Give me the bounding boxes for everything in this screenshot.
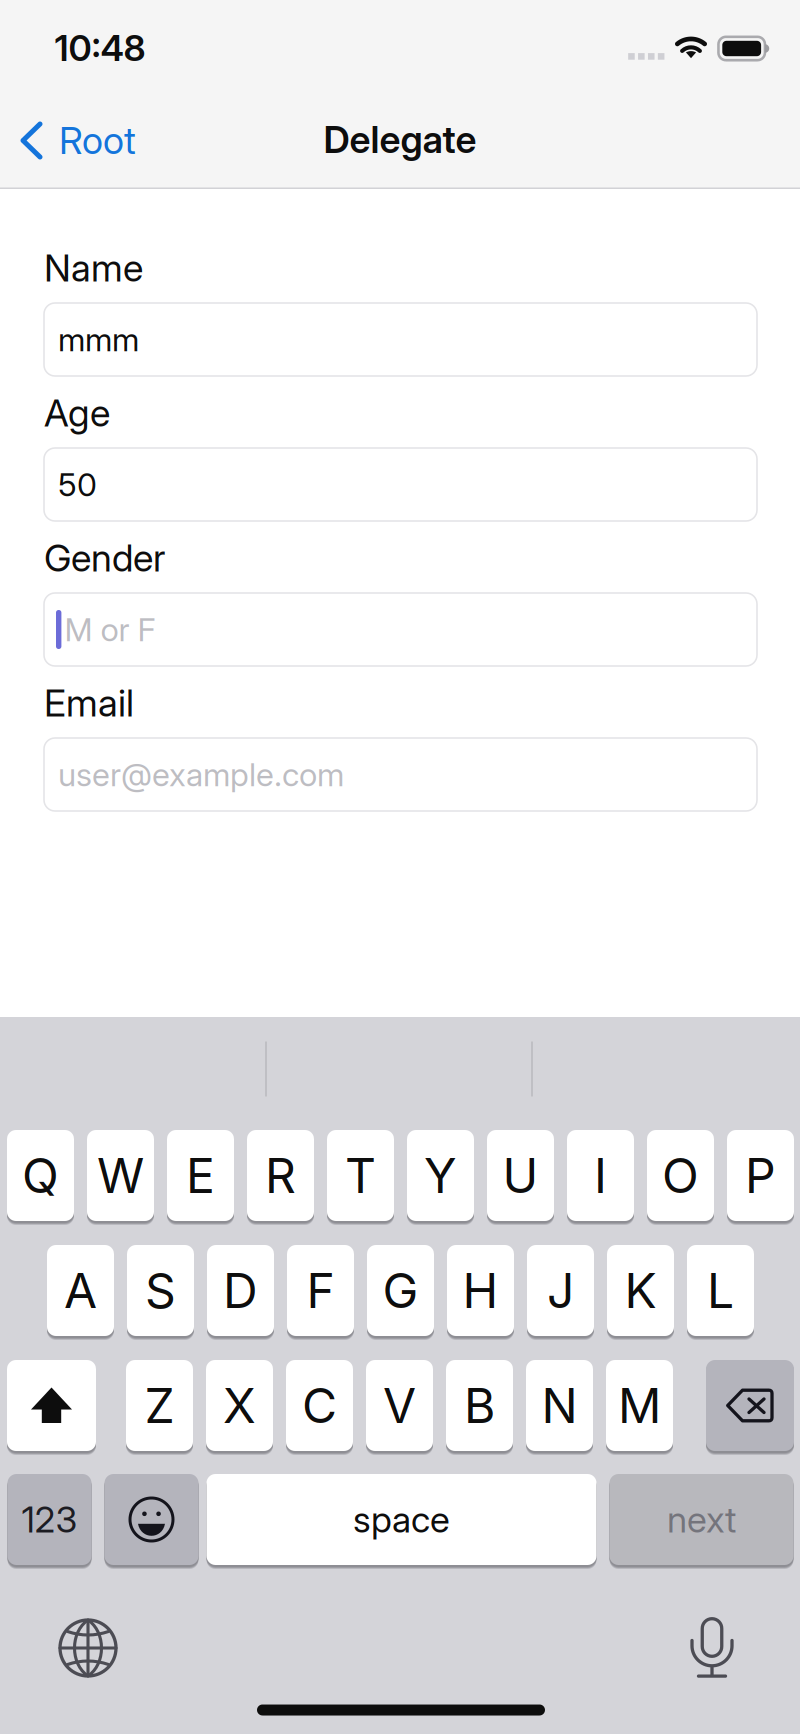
button[interactable]: N bbox=[526, 1360, 593, 1451]
button[interactable]: B bbox=[446, 1360, 513, 1451]
button[interactable]: user@example.com bbox=[44, 738, 757, 811]
button[interactable]: Next keyboard bbox=[50, 1610, 126, 1686]
staticText: Delegate bbox=[323, 117, 476, 162]
staticText: B bbox=[464, 1376, 495, 1435]
button[interactable]: X bbox=[206, 1360, 273, 1451]
button[interactable]: 123 bbox=[7, 1474, 91, 1565]
button[interactable]: Dictation bbox=[677, 1610, 747, 1686]
staticText: E bbox=[186, 1146, 215, 1205]
button[interactable]: S bbox=[127, 1245, 194, 1336]
staticText: user@example.com bbox=[58, 755, 344, 794]
staticText: Z bbox=[144, 1376, 174, 1435]
staticText: Y bbox=[424, 1146, 457, 1205]
button[interactable]: Root bbox=[0, 96, 152, 189]
staticText: Gender bbox=[44, 535, 165, 581]
staticText: Q bbox=[22, 1146, 59, 1205]
staticText: Name bbox=[44, 245, 143, 291]
staticText: J bbox=[547, 1261, 574, 1320]
staticText: M or F bbox=[64, 610, 155, 649]
button[interactable]: A bbox=[47, 1245, 114, 1336]
button[interactable]: C bbox=[286, 1360, 353, 1451]
button[interactable]: M or F bbox=[44, 593, 757, 666]
staticText: 50 bbox=[58, 465, 97, 504]
staticText: L bbox=[707, 1261, 734, 1320]
button[interactable]: J bbox=[527, 1245, 594, 1336]
button[interactable]: Delete bbox=[706, 1360, 794, 1451]
button[interactable]: I bbox=[567, 1130, 634, 1221]
staticText: next bbox=[667, 1498, 736, 1541]
button[interactable]: next bbox=[609, 1474, 793, 1565]
staticText: R bbox=[265, 1146, 296, 1205]
button[interactable]: T bbox=[327, 1130, 394, 1221]
button[interactable]: space bbox=[206, 1474, 596, 1565]
staticText: Age bbox=[44, 390, 110, 436]
staticText: H bbox=[462, 1261, 498, 1320]
staticText: N bbox=[541, 1376, 577, 1435]
button[interactable]: D bbox=[207, 1245, 274, 1336]
button[interactable]: P bbox=[727, 1130, 794, 1221]
staticText: 10:48 bbox=[54, 26, 145, 70]
staticText: G bbox=[382, 1261, 418, 1320]
staticText: P bbox=[745, 1146, 776, 1205]
button[interactable]: mmm bbox=[44, 303, 757, 376]
staticText: I bbox=[594, 1146, 607, 1205]
button[interactable]: Shift bbox=[7, 1360, 96, 1451]
button[interactable]: Y bbox=[407, 1130, 474, 1221]
staticText: T bbox=[345, 1146, 376, 1205]
button[interactable]: Emoji bbox=[104, 1474, 198, 1565]
staticText: M bbox=[618, 1376, 661, 1435]
staticText: X bbox=[223, 1376, 256, 1435]
button[interactable]: 50 bbox=[44, 448, 757, 521]
staticText: F bbox=[306, 1261, 334, 1320]
staticText: K bbox=[624, 1261, 656, 1320]
staticText: D bbox=[223, 1261, 258, 1320]
staticText: Root bbox=[59, 118, 136, 163]
button[interactable]: H bbox=[447, 1245, 514, 1336]
button[interactable]: W bbox=[87, 1130, 154, 1221]
staticText: U bbox=[502, 1146, 538, 1205]
staticText: S bbox=[145, 1261, 176, 1320]
button[interactable]: Q bbox=[7, 1130, 74, 1221]
button[interactable]: M bbox=[606, 1360, 673, 1451]
staticText: O bbox=[662, 1146, 699, 1205]
staticText: Email bbox=[44, 680, 134, 726]
button[interactable]: L bbox=[687, 1245, 754, 1336]
button[interactable]: G bbox=[367, 1245, 434, 1336]
staticText: mmm bbox=[58, 320, 139, 359]
staticText: C bbox=[302, 1376, 337, 1435]
staticText: V bbox=[383, 1376, 416, 1435]
button[interactable]: O bbox=[647, 1130, 714, 1221]
button[interactable]: V bbox=[366, 1360, 433, 1451]
staticText: W bbox=[97, 1146, 144, 1205]
button[interactable]: E bbox=[167, 1130, 234, 1221]
staticText: 123 bbox=[21, 1498, 77, 1541]
button[interactable]: K bbox=[607, 1245, 674, 1336]
button[interactable]: U bbox=[487, 1130, 554, 1221]
button[interactable]: F bbox=[287, 1245, 354, 1336]
button[interactable]: R bbox=[247, 1130, 314, 1221]
staticText: A bbox=[64, 1261, 97, 1320]
button[interactable]: Z bbox=[126, 1360, 193, 1451]
staticText: space bbox=[353, 1498, 450, 1541]
